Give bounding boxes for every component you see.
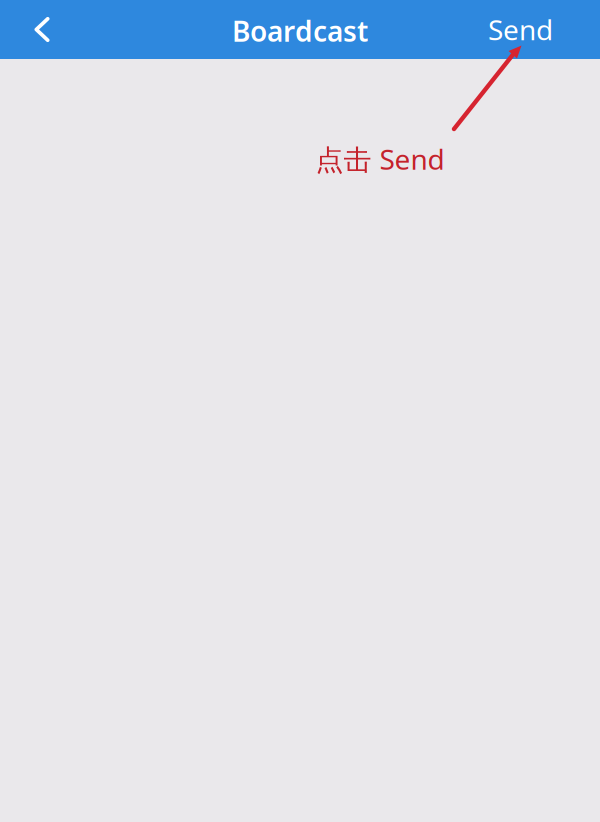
staticText: Send: [488, 11, 553, 48]
staticText: Boardcast: [232, 12, 368, 50]
staticText: 点击 Send: [315, 140, 444, 178]
button[interactable]: Back: [0, 0, 84, 59]
button[interactable]: Send: [441, 0, 600, 59]
